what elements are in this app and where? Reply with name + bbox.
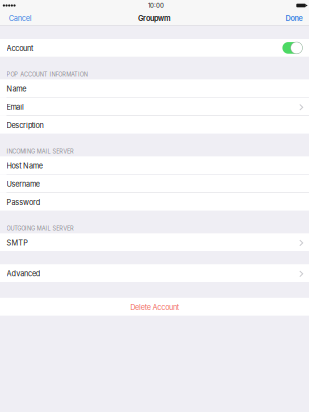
staticText: Name bbox=[6, 84, 26, 93]
button[interactable]: Description bbox=[0, 116, 309, 134]
button[interactable]: Host Name bbox=[0, 156, 309, 174]
staticText: 10:00 bbox=[148, 2, 164, 9]
staticText: POP ACCOUNT INFORMATION bbox=[6, 71, 88, 78]
staticText: Delete Account bbox=[130, 303, 179, 312]
button[interactable]: Done bbox=[284, 12, 303, 25]
staticText: Account bbox=[6, 44, 33, 53]
staticText: Password bbox=[6, 198, 40, 207]
button[interactable]: Account bbox=[0, 39, 309, 57]
staticText: Email bbox=[6, 103, 24, 112]
staticText: INCOMING MAIL SERVER bbox=[6, 148, 74, 155]
staticText: Username bbox=[6, 180, 40, 189]
button[interactable]: Username bbox=[0, 175, 309, 192]
button[interactable]: Email bbox=[0, 98, 309, 115]
staticText: Advanced bbox=[6, 269, 40, 278]
staticText: Description bbox=[6, 121, 43, 130]
button[interactable]: Name bbox=[0, 79, 309, 97]
staticText: OUTGOING MAIL SERVER bbox=[6, 225, 74, 232]
staticText: Host Name bbox=[6, 161, 43, 170]
button[interactable]: Delete Account bbox=[0, 298, 309, 316]
button[interactable]: SMTP bbox=[0, 233, 309, 251]
staticText: Groupwm bbox=[138, 14, 171, 23]
staticText: Cancel bbox=[9, 14, 32, 23]
button[interactable]: Cancel bbox=[8, 12, 33, 25]
staticText: SMTP bbox=[6, 238, 28, 247]
button[interactable]: Advanced bbox=[0, 264, 309, 282]
staticText: Done bbox=[285, 14, 302, 23]
button[interactable]: Password bbox=[0, 193, 309, 211]
